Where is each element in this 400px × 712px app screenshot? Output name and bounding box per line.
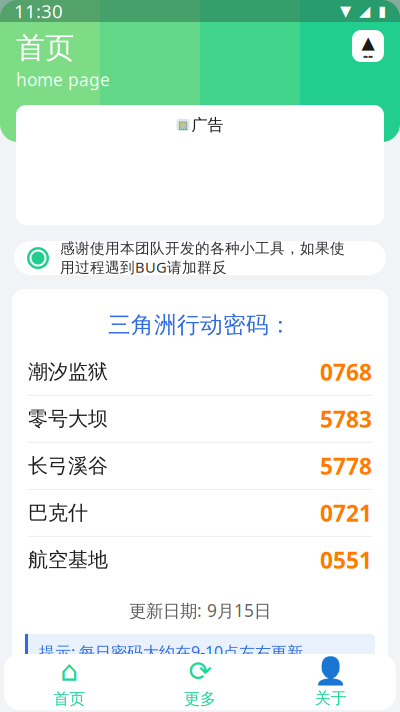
staticText: 长弓溪谷 [28, 454, 108, 478]
staticText: home page [16, 68, 110, 91]
staticText: 提示: 每日密码大约在9-10点左右更新 [39, 641, 303, 662]
staticText: 零号大坝 [28, 407, 108, 431]
staticText: 三角洲行动密码： [108, 311, 292, 339]
button[interactable]: 👤 [265, 654, 396, 710]
staticText: 0551 [320, 545, 372, 575]
staticText: 巴克什 [28, 501, 88, 525]
button[interactable]: App logo [352, 30, 384, 62]
staticText: 5783 [320, 404, 372, 434]
staticText: 航空基地 [28, 548, 108, 572]
staticText: 0768 [320, 357, 372, 387]
staticText: 首页 [16, 30, 74, 66]
staticText: 感谢使用本团队开发的各种小工具，如果使用过程遇到BUG请加群反 [60, 239, 345, 277]
staticText: ▲ [361, 33, 374, 52]
staticText: 11:30 [14, 0, 63, 23]
button[interactable]: ⟳ [135, 654, 265, 710]
staticText: 关于 [315, 688, 347, 708]
staticText: 更新日期: 9月15日 [129, 599, 271, 622]
staticText: ▬▬ [363, 53, 373, 59]
staticText: 广告 [191, 115, 223, 135]
staticText: ▮ [378, 3, 386, 19]
staticText: ⌂ [60, 655, 78, 687]
staticText: 0721 [320, 498, 372, 528]
staticText: ▨ [178, 119, 188, 131]
staticText: 👤 [314, 656, 347, 686]
staticText: ⟳ [188, 655, 211, 687]
staticText: ▼ [340, 3, 351, 19]
staticText: 首页 [53, 689, 85, 709]
button[interactable]: ⌂ [4, 654, 135, 710]
staticText: 潮汐监狱 [28, 360, 108, 384]
staticText: 5778 [320, 451, 372, 481]
staticText: 更多 [184, 689, 216, 709]
staticText: ◢ [359, 3, 370, 19]
